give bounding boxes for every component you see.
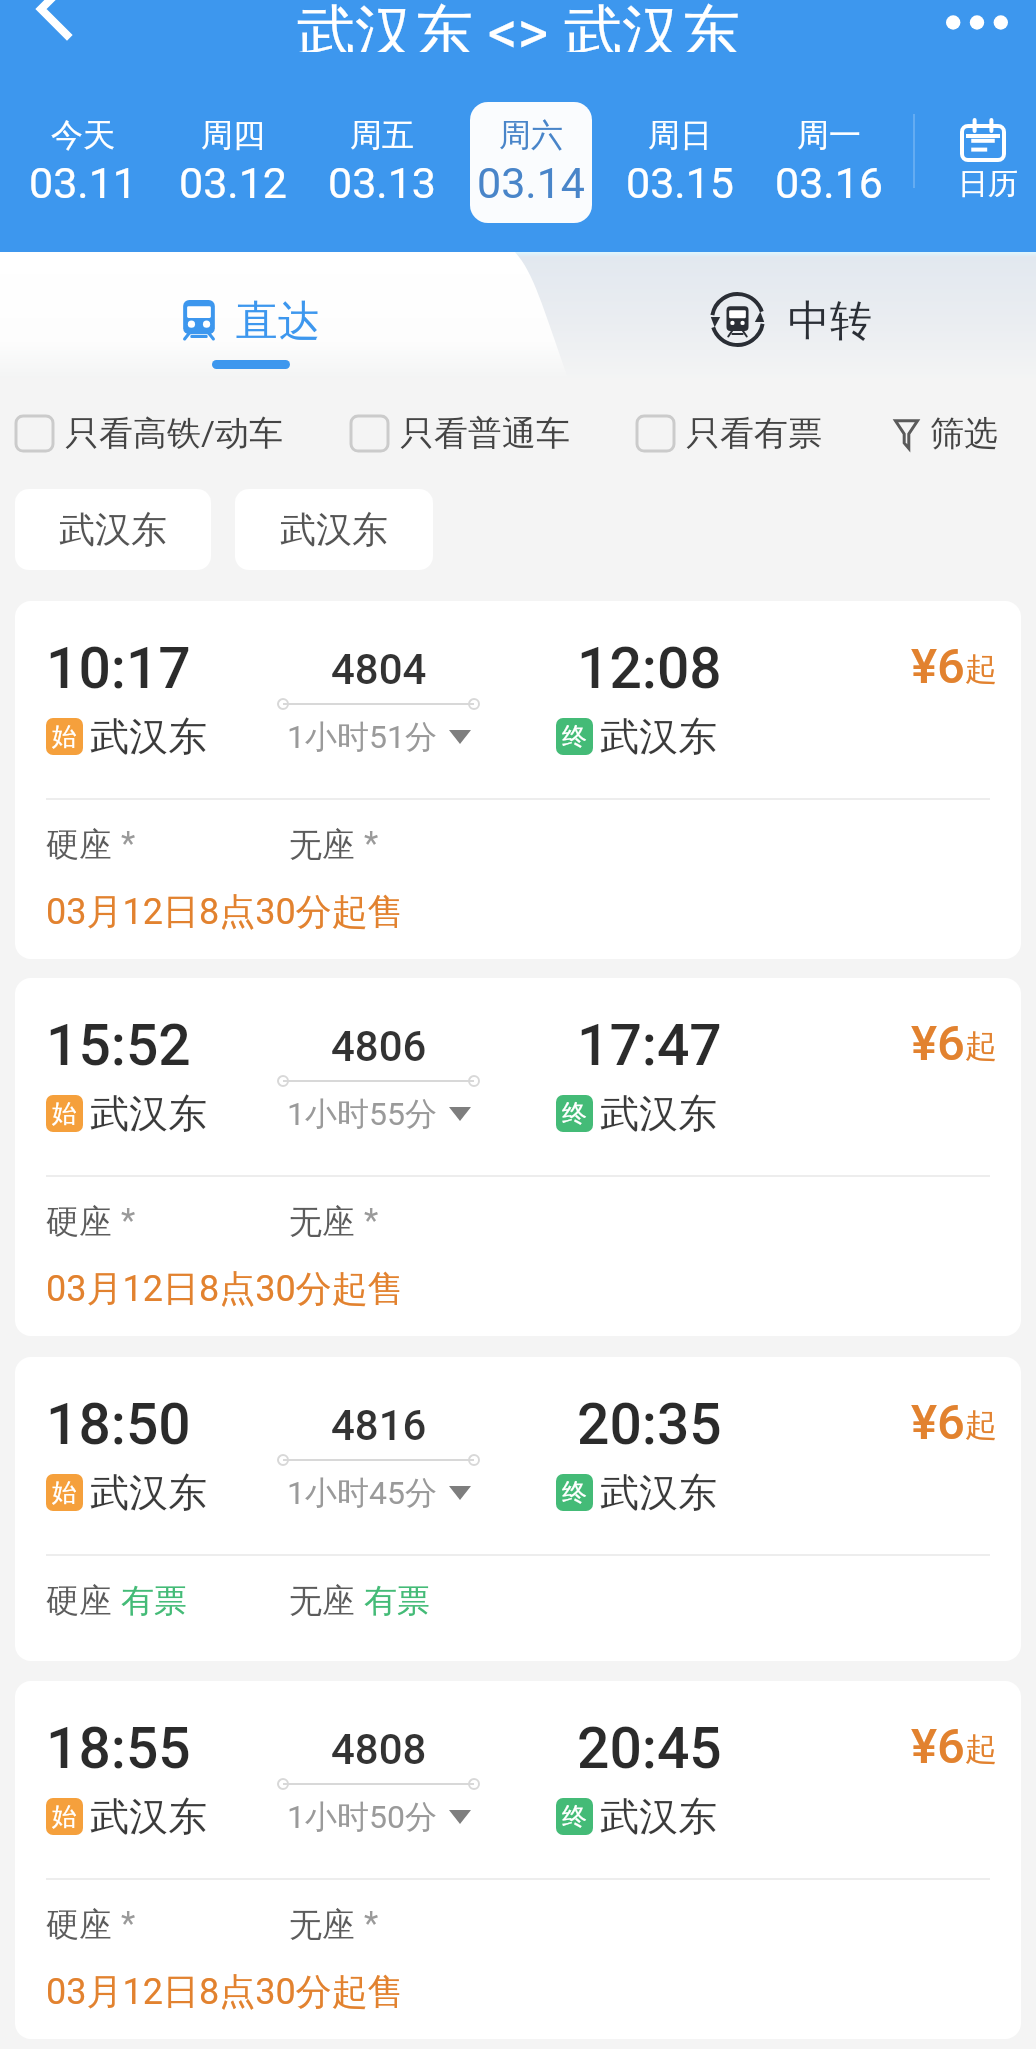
staticText: 20:45 (577, 1715, 722, 1782)
staticText: 1小时51分 (287, 717, 437, 757)
staticText: * (121, 824, 136, 863)
staticText: ¥6 (911, 1718, 965, 1775)
button[interactable]: 18:50 (15, 1357, 1021, 1661)
staticText: 始 (52, 721, 77, 752)
staticText: 无座 (289, 1904, 364, 1946)
staticText: 1小时45分 (287, 1473, 437, 1513)
staticText: 硬座 (46, 1904, 121, 1946)
button[interactable]: 只看普通车 (351, 412, 570, 455)
button[interactable]: 今天 (8, 64, 158, 252)
button[interactable]: Back (13, 0, 95, 37)
staticText: 起 (965, 1405, 997, 1445)
button[interactable]: 周六 (456, 64, 605, 252)
staticText: 今天 (51, 115, 115, 155)
staticText: 03月12日8点30分起售 (46, 1969, 404, 2014)
staticText: 03.12 (179, 158, 288, 208)
staticText: * (121, 1201, 136, 1240)
staticText: 周日 (648, 115, 712, 155)
staticText: 武汉东 (59, 507, 167, 552)
button[interactable]: 武汉东 (235, 489, 433, 570)
staticText: 只看普通车 (400, 412, 570, 455)
staticText: 20:35 (577, 1391, 722, 1458)
button[interactable]: 筛选 (895, 412, 998, 455)
staticText: 筛选 (930, 412, 998, 455)
button[interactable]: Calendar (903, 64, 1036, 252)
staticText: 18:50 (46, 1391, 191, 1458)
staticText: 周六 (499, 115, 563, 155)
staticText: ¥6 (911, 1394, 965, 1451)
staticText: ¥6 (911, 1015, 965, 1072)
staticText: 17:47 (577, 1012, 722, 1079)
staticText: 武汉东 (90, 1468, 207, 1517)
staticText: * (364, 1201, 379, 1240)
button[interactable]: 只看高铁/动车 (16, 412, 284, 455)
staticText: 硬座 (46, 1201, 121, 1243)
staticText: 03.15 (626, 158, 735, 208)
staticText: 03.13 (328, 158, 437, 208)
staticText: 直达 (236, 295, 320, 348)
button[interactable]: 只看有票 (637, 412, 822, 455)
staticText: 周四 (201, 115, 265, 155)
staticText: 03月12日8点30分起售 (46, 889, 404, 934)
button[interactable]: 直达 (150, 252, 370, 378)
staticText: 起 (965, 1026, 997, 1066)
staticText: 武汉东 (280, 507, 388, 552)
staticText: 始 (52, 1477, 77, 1508)
staticText: 硬座 (46, 1580, 121, 1622)
button[interactable]: 周一 (754, 64, 903, 252)
staticText: 武汉东 (90, 1089, 207, 1138)
staticText: 只看高铁/动车 (65, 412, 284, 455)
staticText: 无座 (289, 1580, 364, 1622)
button[interactable]: More options (946, 0, 1026, 50)
staticText: 日历 (958, 165, 1018, 203)
staticText: 终 (562, 721, 587, 752)
button[interactable]: 10:17 (15, 601, 1021, 959)
staticText: 终 (562, 1098, 587, 1129)
staticText: 只看有票 (686, 412, 822, 455)
button[interactable]: 周四 (158, 64, 307, 252)
staticText: 武汉东 (90, 712, 207, 761)
staticText: 4816 (331, 1401, 427, 1450)
staticText: 武汉东 (90, 1792, 207, 1841)
staticText: 周五 (350, 115, 414, 155)
staticText: 终 (562, 1477, 587, 1508)
staticText: 03月12日8点30分起售 (46, 1266, 404, 1311)
staticText: * (121, 1904, 136, 1943)
staticText: * (364, 824, 379, 863)
staticText: 4806 (331, 1022, 427, 1071)
staticText: 4808 (331, 1725, 427, 1774)
staticText: 10:17 (46, 635, 191, 702)
staticText: 1小时50分 (287, 1797, 437, 1837)
staticText: 有票 (121, 1580, 187, 1622)
staticText: 有票 (364, 1580, 430, 1622)
staticText: 03.14 (477, 158, 586, 208)
staticText: 15:52 (46, 1012, 191, 1079)
staticText: 武汉东 (600, 1792, 717, 1841)
staticText: 03.16 (775, 158, 884, 208)
staticText: 周一 (797, 115, 861, 155)
staticText: 武汉东 (600, 1089, 717, 1138)
staticText: 始 (52, 1098, 77, 1129)
staticText: 12:08 (577, 635, 722, 702)
staticText: 始 (52, 1801, 77, 1832)
button[interactable]: 周日 (605, 64, 754, 252)
staticText: 硬座 (46, 824, 121, 866)
staticText: 1小时55分 (287, 1094, 437, 1134)
staticText: 武汉东 (600, 712, 717, 761)
staticText: 起 (965, 1729, 997, 1769)
button[interactable]: 中转 (680, 252, 900, 378)
button[interactable]: 武汉东 (15, 489, 211, 570)
staticText: 4804 (331, 645, 427, 694)
staticText: 武汉东 <> 武汉东 (296, 0, 741, 52)
staticText: 无座 (289, 1201, 364, 1243)
staticText: 起 (965, 649, 997, 689)
staticText: 无座 (289, 824, 364, 866)
staticText: 终 (562, 1801, 587, 1832)
staticText: * (364, 1904, 379, 1943)
staticText: 18:55 (46, 1715, 191, 1782)
staticText: 中转 (788, 295, 872, 348)
button[interactable]: 周五 (307, 64, 456, 252)
button[interactable]: 18:55 (15, 1681, 1021, 2039)
staticText: 武汉东 (600, 1468, 717, 1517)
button[interactable]: 15:52 (15, 978, 1021, 1336)
